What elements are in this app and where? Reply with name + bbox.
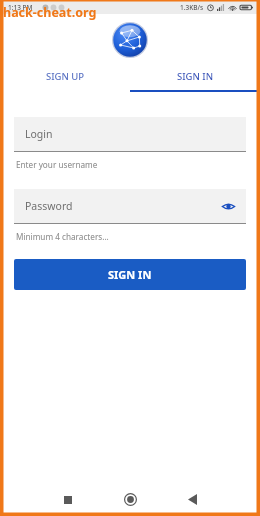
staticText: 1.3KB/s bbox=[180, 3, 204, 12]
staticText: Minimum 4 characters... bbox=[16, 231, 109, 242]
staticText: hack-cheat.org bbox=[3, 4, 97, 21]
button[interactable]: SIGN IN bbox=[130, 62, 260, 90]
button[interactable]: Recents bbox=[37, 483, 99, 516]
staticText: Password bbox=[25, 199, 73, 213]
staticText: SIGN IN bbox=[108, 267, 152, 282]
button[interactable]: Back bbox=[161, 483, 223, 516]
button[interactable]: SIGN UP bbox=[0, 62, 130, 90]
staticText: Enter your username bbox=[16, 159, 98, 170]
button[interactable]: SIGN IN bbox=[14, 259, 246, 290]
staticText: Login bbox=[25, 127, 53, 141]
button[interactable]: Login bbox=[14, 117, 246, 151]
staticText: 1:13 PM bbox=[8, 3, 33, 12]
staticText: SIGN IN bbox=[177, 70, 214, 83]
button[interactable]: Password bbox=[14, 189, 246, 223]
button[interactable]: Home bbox=[99, 483, 161, 516]
button[interactable]: Show password bbox=[218, 196, 238, 216]
staticText: SIGN UP bbox=[46, 70, 85, 83]
